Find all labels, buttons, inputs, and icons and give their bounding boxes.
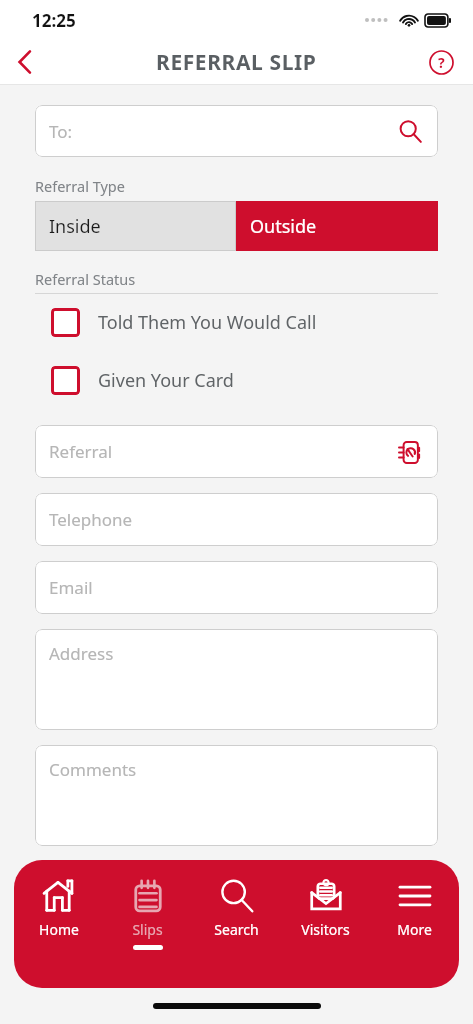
staticText: Outside — [250, 214, 317, 239]
staticText: Search — [214, 920, 259, 939]
staticText: Comments — [49, 758, 137, 781]
button[interactable]: Search — [192, 874, 281, 988]
button[interactable]: More — [370, 874, 459, 988]
button[interactable]: Told Them You Would Call — [35, 308, 438, 337]
button[interactable]: Inside — [35, 201, 236, 251]
button[interactable]: Search — [390, 111, 430, 151]
staticText: Inside — [49, 214, 101, 239]
staticText: More — [397, 920, 432, 939]
staticText: 12:25 — [32, 9, 76, 32]
button[interactable]: Help — [419, 40, 463, 84]
button[interactable]: Telephone — [35, 493, 438, 546]
button[interactable]: Address — [35, 629, 438, 730]
button[interactable]: Back — [0, 40, 48, 84]
staticText: Address — [49, 642, 114, 665]
staticText: Referral — [49, 440, 113, 463]
staticText: Given Your Card — [98, 368, 234, 393]
staticText: Email — [49, 576, 93, 599]
staticText: ? — [438, 53, 445, 72]
staticText: Referral Status — [35, 269, 136, 289]
button[interactable]: Visitors — [281, 874, 370, 988]
staticText: Slips — [132, 920, 163, 939]
button[interactable]: Email — [35, 561, 438, 614]
button[interactable]: Comments — [35, 745, 438, 846]
button[interactable]: Slips — [103, 874, 192, 988]
button[interactable]: Pick contact — [391, 433, 429, 471]
button[interactable]: To: — [35, 105, 438, 157]
staticText: Visitors — [301, 920, 350, 939]
button[interactable]: Given Your Card — [35, 366, 438, 395]
button[interactable]: Outside — [236, 201, 438, 251]
staticText: To: — [49, 120, 73, 143]
staticText: REFERRAL SLIP — [156, 48, 317, 77]
button[interactable]: Referral — [35, 425, 438, 478]
staticText: Told Them You Would Call — [98, 310, 317, 335]
staticText: Home — [39, 920, 79, 939]
staticText: Telephone — [49, 508, 133, 531]
button[interactable]: Home — [14, 874, 103, 988]
staticText: Referral Type — [35, 176, 125, 196]
